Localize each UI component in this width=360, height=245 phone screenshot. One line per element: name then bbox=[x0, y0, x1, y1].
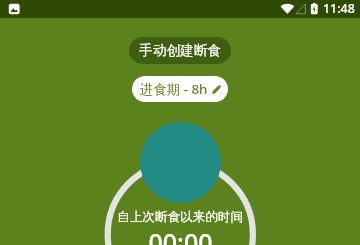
staticText: 手动创建断食 bbox=[139, 42, 222, 59]
staticText: 进食期 - 8h bbox=[140, 80, 208, 98]
staticText: 11:48 bbox=[323, 0, 355, 17]
button[interactable]: 手动创建断食 bbox=[129, 37, 231, 64]
button[interactable]: 开始断食 bbox=[140, 122, 221, 203]
button[interactable]: 进食期 - 8h bbox=[132, 76, 228, 102]
staticText: 00:00 bbox=[148, 225, 213, 245]
staticText: 自上次断食以来的时间 bbox=[117, 209, 243, 225]
